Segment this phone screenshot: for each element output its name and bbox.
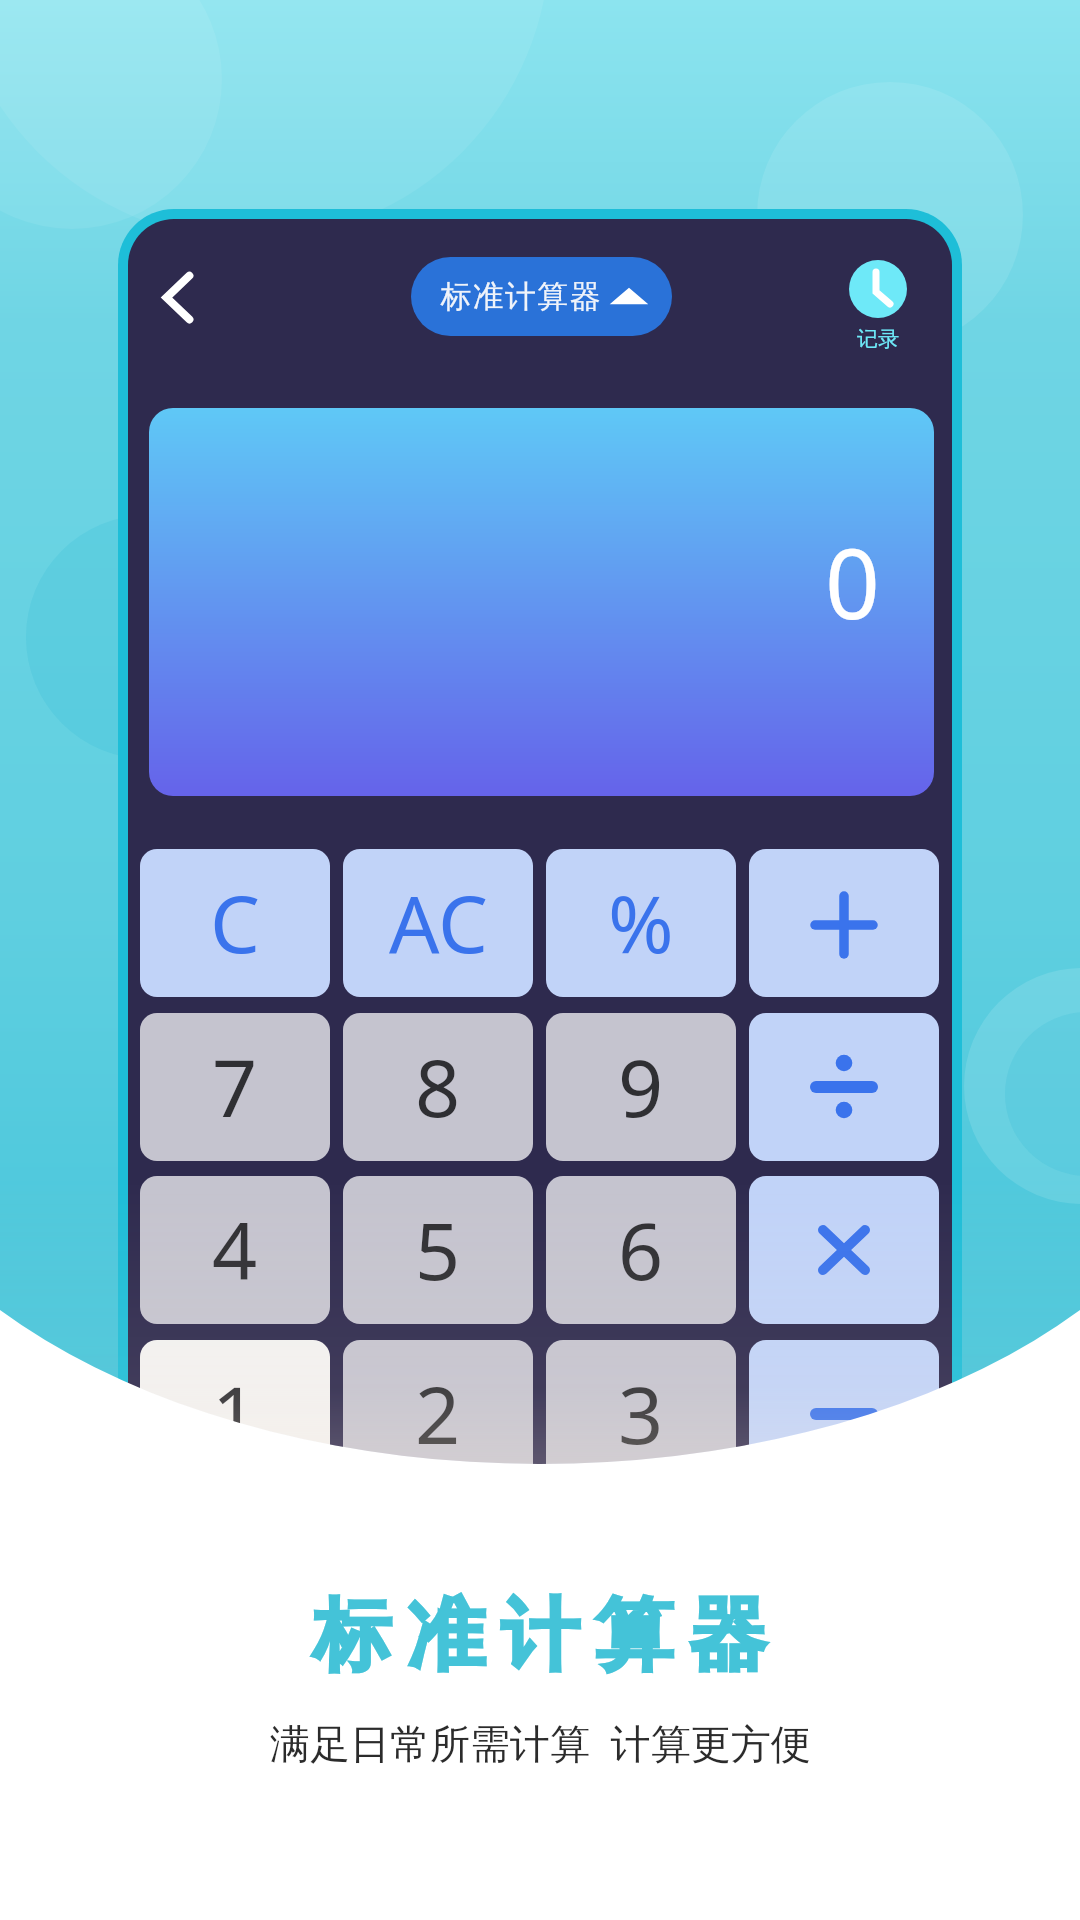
staticText: % [608,869,674,977]
button[interactable]: 7 [140,1013,330,1161]
button[interactable]: 1 [140,1340,330,1488]
button[interactable]: 8 [343,1013,533,1161]
button[interactable]: 9 [546,1013,736,1161]
button[interactable]: Multiply [749,1176,939,1324]
button[interactable]: 记录 [828,260,928,352]
staticText: 5 [415,1196,461,1304]
button[interactable]: 6 [546,1176,736,1324]
button[interactable]: 3 [546,1340,736,1488]
button[interactable]: C [140,849,330,997]
staticText: 7 [212,1033,258,1141]
staticText: 6 [618,1196,664,1304]
button[interactable]: 2 [343,1340,533,1488]
staticText: 标准计算器 [440,277,601,316]
button[interactable]: Back [138,269,218,349]
button[interactable]: Minus [749,1340,939,1488]
staticText: 记录 [857,326,899,352]
staticText: 9 [618,1033,664,1141]
button[interactable]: Divide [749,1013,939,1161]
button[interactable]: % [546,849,736,997]
staticText: 1 [212,1360,258,1468]
button[interactable]: AC [343,849,533,997]
staticText: 3 [618,1360,664,1468]
button[interactable]: 标准计算器 [411,257,672,336]
staticText: C [210,869,260,977]
staticText: 满足日常所需计算 计算更方便 [270,1715,811,1770]
button[interactable]: 4 [140,1176,330,1324]
button[interactable]: Plus [749,849,939,997]
staticText: AC [389,869,488,977]
staticText: 0 [825,516,880,647]
staticText: 标准计算器 [305,1587,775,1685]
staticText: 8 [415,1033,461,1141]
staticText: 2 [415,1360,461,1468]
staticText: 4 [212,1196,258,1304]
button[interactable]: 5 [343,1176,533,1324]
